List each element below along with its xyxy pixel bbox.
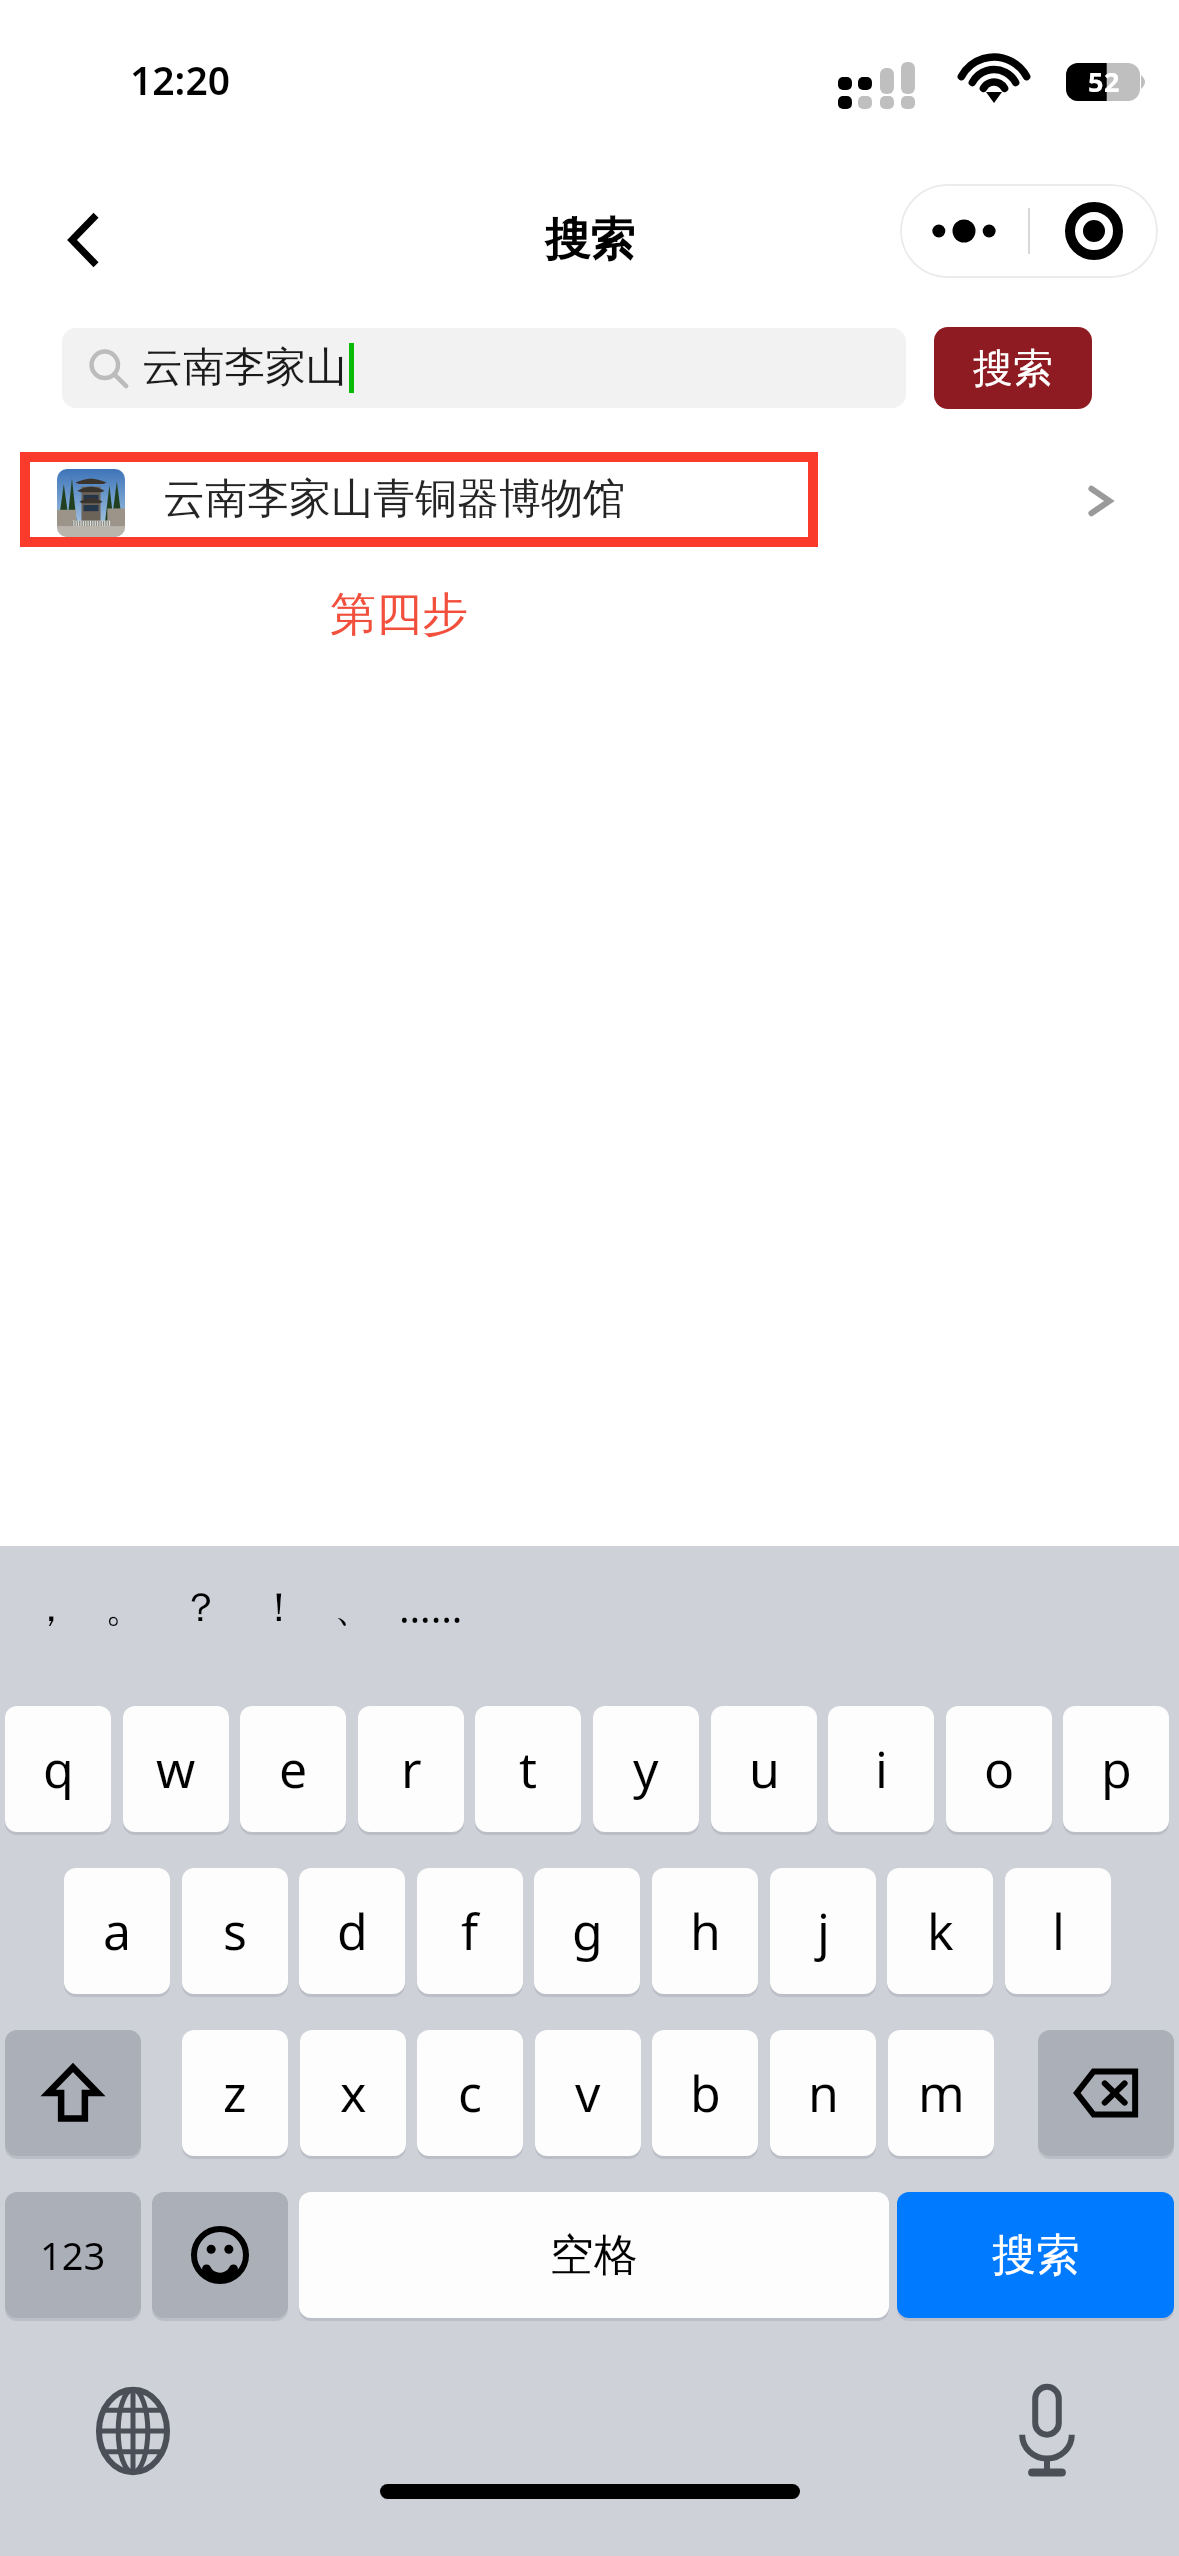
staticText: z: [223, 2059, 247, 2127]
staticText: t: [519, 1735, 538, 1803]
button[interactable]: e: [240, 1706, 346, 1832]
button[interactable]: 、: [315, 1552, 393, 1662]
staticText: 12:20: [130, 53, 230, 103]
button[interactable]: Back: [28, 184, 140, 296]
staticText: u: [749, 1735, 780, 1803]
button[interactable]: s: [182, 1868, 288, 1994]
button[interactable]: w: [123, 1706, 229, 1832]
button[interactable]: Close: [1030, 184, 1158, 278]
button[interactable]: c: [417, 2030, 523, 2156]
button[interactable]: 搜索: [934, 327, 1092, 409]
staticText: 搜索: [545, 212, 635, 269]
button[interactable]: Voice input: [992, 2376, 1102, 2486]
staticText: n: [808, 2059, 839, 2127]
staticText: 搜索: [992, 2228, 1080, 2283]
button[interactable]: o: [946, 1706, 1052, 1832]
button[interactable]: b: [652, 2030, 758, 2156]
staticText: p: [1101, 1735, 1132, 1803]
staticText: 云南李家山青铜器博物馆: [163, 473, 625, 526]
staticText: k: [927, 1897, 954, 1965]
staticText: o: [984, 1735, 1015, 1803]
staticText: l: [1052, 1897, 1065, 1965]
button[interactable]: 空格: [299, 2192, 889, 2318]
staticText: 123: [40, 2229, 106, 2281]
staticText: a: [103, 1897, 132, 1965]
button[interactable]: 云南李家山青铜器博物馆: [0, 445, 1179, 553]
staticText: ！: [259, 1582, 299, 1632]
button[interactable]: i: [828, 1706, 934, 1832]
button[interactable]: Emoji: [152, 2192, 288, 2318]
staticText: ，: [31, 1582, 71, 1632]
staticText: x: [340, 2059, 367, 2127]
button[interactable]: p: [1063, 1706, 1169, 1832]
staticText: v: [575, 2059, 601, 2127]
button[interactable]: ，: [12, 1552, 90, 1662]
staticText: 第四步: [330, 586, 468, 644]
button[interactable]: n: [770, 2030, 876, 2156]
staticText: s: [223, 1897, 247, 1965]
staticText: i: [875, 1735, 888, 1803]
button[interactable]: h: [652, 1868, 758, 1994]
button[interactable]: x: [300, 2030, 406, 2156]
staticText: 空格: [550, 2228, 638, 2283]
button[interactable]: Shift: [5, 2030, 141, 2156]
button[interactable]: ……: [392, 1552, 470, 1662]
button[interactable]: q: [5, 1706, 111, 1832]
staticText: ……: [399, 1580, 463, 1634]
staticText: j: [817, 1897, 830, 1965]
staticText: 搜索: [973, 343, 1053, 393]
button[interactable]: v: [535, 2030, 641, 2156]
button[interactable]: Switch language: [78, 2376, 188, 2486]
button[interactable]: More: [900, 184, 1028, 278]
staticText: 云南李家山: [142, 342, 347, 394]
staticText: y: [633, 1735, 659, 1803]
button[interactable]: u: [711, 1706, 817, 1832]
button[interactable]: ！: [240, 1552, 318, 1662]
staticText: q: [43, 1735, 74, 1803]
button[interactable]: r: [358, 1706, 464, 1832]
button[interactable]: m: [888, 2030, 994, 2156]
staticText: h: [690, 1897, 721, 1965]
button[interactable]: 搜索: [897, 2192, 1174, 2318]
button[interactable]: 云南李家山: [62, 328, 906, 408]
button[interactable]: Backspace: [1038, 2030, 1174, 2156]
button[interactable]: 123: [5, 2192, 141, 2318]
staticText: 5: [1088, 63, 1104, 100]
staticText: 。: [105, 1582, 145, 1632]
button[interactable]: a: [64, 1868, 170, 1994]
staticText: w: [156, 1735, 196, 1803]
button[interactable]: 。: [86, 1552, 164, 1662]
button[interactable]: y: [593, 1706, 699, 1832]
button[interactable]: l: [1005, 1868, 1111, 1994]
staticText: 2: [1104, 63, 1120, 100]
button[interactable]: j: [770, 1868, 876, 1994]
staticText: c: [458, 2059, 482, 2127]
staticText: f: [461, 1897, 479, 1965]
staticText: e: [279, 1735, 308, 1803]
button[interactable]: ？: [162, 1552, 240, 1662]
button[interactable]: t: [475, 1706, 581, 1832]
button[interactable]: k: [887, 1868, 993, 1994]
staticText: ？: [181, 1582, 221, 1632]
button[interactable]: z: [182, 2030, 288, 2156]
staticText: r: [401, 1735, 422, 1803]
staticText: 、: [334, 1582, 374, 1632]
button[interactable]: f: [417, 1868, 523, 1994]
button[interactable]: d: [299, 1868, 405, 1994]
staticText: m: [918, 2059, 965, 2127]
staticText: g: [572, 1897, 603, 1965]
staticText: d: [337, 1897, 368, 1965]
staticText: b: [690, 2059, 721, 2127]
button[interactable]: g: [534, 1868, 640, 1994]
